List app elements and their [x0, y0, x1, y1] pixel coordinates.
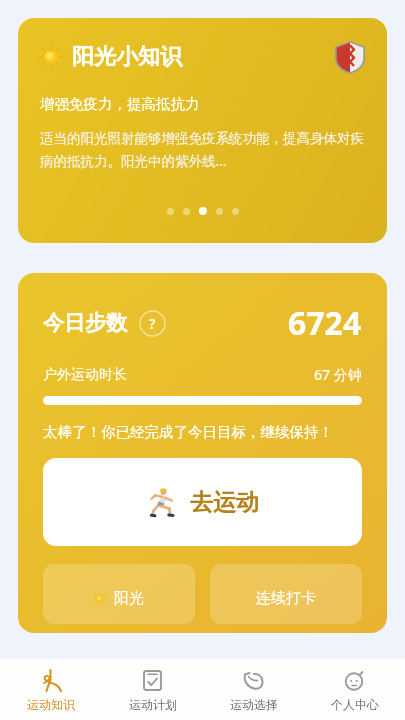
staticText: 增强免疫力，提高抵抗力 — [40, 95, 200, 113]
button[interactable]: 阳光小知识 — [18, 18, 387, 243]
staticText: 去运动 — [190, 488, 259, 517]
button[interactable]: 运动选择 — [203, 659, 304, 720]
staticText: 67 分钟 — [314, 365, 362, 384]
staticText: 太棒了！你已经完成了今日目标，继续保持！ — [43, 423, 333, 441]
button[interactable]: 帮助 — [139, 310, 166, 337]
staticText: 今日步数 — [43, 310, 127, 336]
staticText: 运动知识 — [27, 697, 75, 712]
staticText: 运动选择 — [230, 697, 278, 712]
staticText: 阳光小知识 — [72, 43, 182, 71]
button[interactable]: 个人中心 — [304, 659, 405, 720]
staticText: 连续打卡 — [256, 589, 316, 608]
staticText: 个人中心 — [331, 697, 379, 712]
button[interactable]: 去运动 — [43, 458, 362, 546]
staticText: ? — [149, 314, 156, 333]
staticText: 运动计划 — [129, 697, 177, 712]
staticText: 适当的阳光照射能够增强免疫系统功能，提高身体对疾病的抵抗力。阳光中的紫外线... — [40, 130, 367, 170]
staticText: 6724 — [288, 301, 362, 345]
button[interactable]: 运动知识 — [0, 659, 102, 720]
staticText: 户外运动时长 — [43, 366, 127, 384]
button[interactable]: 运动计划 — [102, 659, 203, 720]
staticText: 阳光 — [114, 589, 144, 608]
button[interactable]: 阳光 — [43, 564, 195, 624]
button[interactable]: 连续打卡 — [210, 564, 362, 624]
